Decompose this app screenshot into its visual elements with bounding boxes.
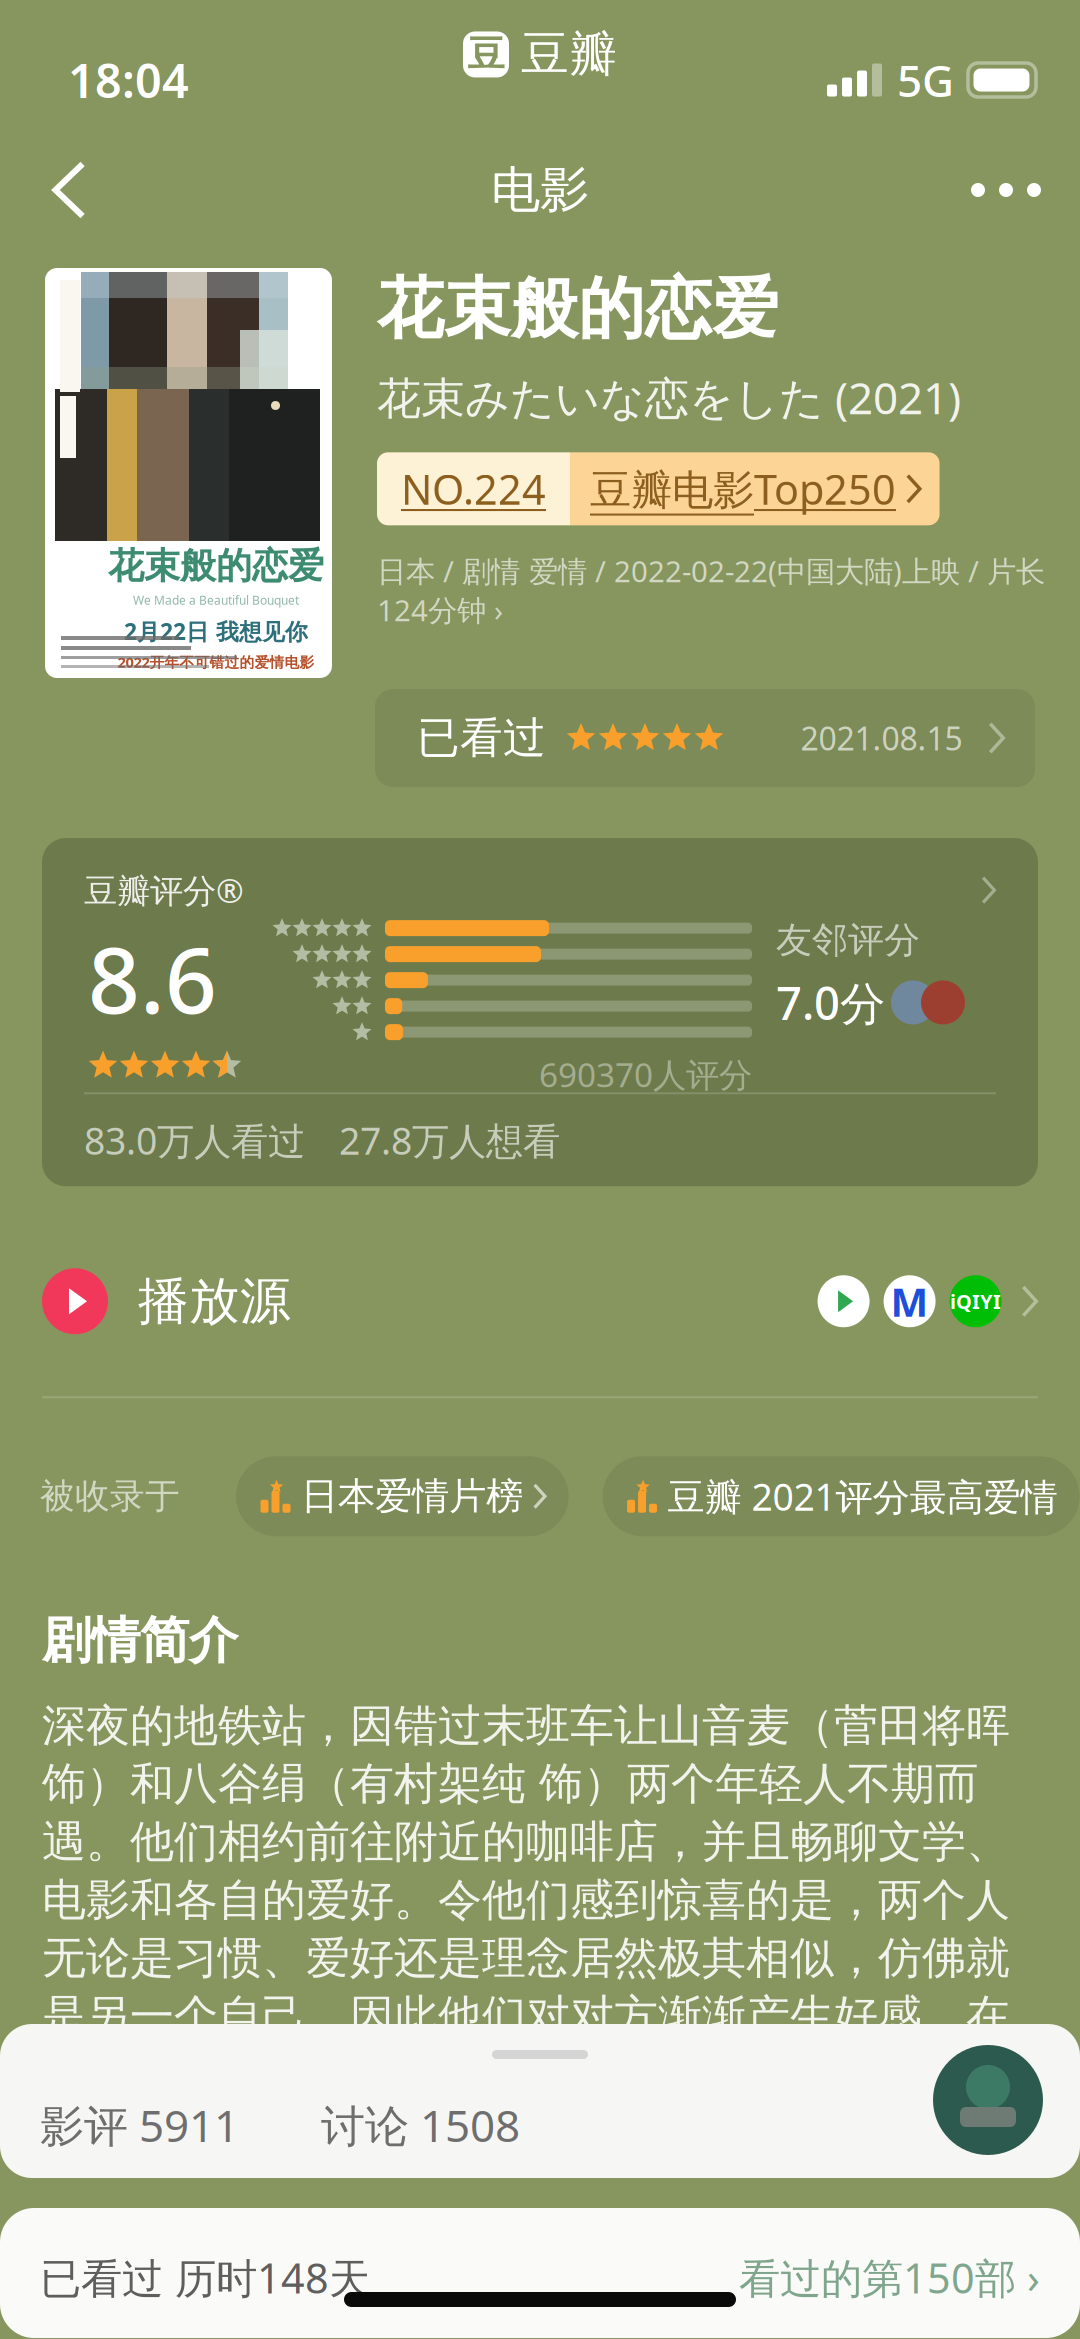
staticText: 播放源: [138, 1270, 291, 1332]
staticText: 剧情简介: [42, 1610, 238, 1671]
staticText: 8.6: [88, 918, 217, 1038]
button[interactable]: More: [946, 131, 1066, 249]
button[interactable]: 豆瓣 2021评分最高爱情: [603, 1456, 1080, 1536]
staticText: 花束みたいな恋をした (2021): [377, 368, 961, 426]
button[interactable]: 日本爱情片榜: [236, 1456, 569, 1536]
button[interactable]: 影评 5911: [0, 2078, 279, 2172]
button[interactable]: Back: [14, 131, 124, 249]
staticText: 83.0万人看过: [84, 1115, 305, 1165]
button[interactable]: 豆瓣评分®: [42, 838, 1038, 1186]
staticText: 5G: [897, 51, 954, 109]
staticText: 被收录于: [40, 1475, 180, 1518]
staticText: 讨论 1508: [321, 2096, 520, 2154]
staticText: NO.224: [401, 461, 546, 516]
staticText: M: [891, 1275, 929, 1328]
staticText: 27.8万人想看: [339, 1115, 560, 1165]
staticText: 豆瓣评分®: [84, 868, 244, 912]
staticText: 日本爱情片榜: [301, 1473, 523, 1519]
staticText: 7.0分: [776, 972, 885, 1033]
staticText: 690370人评分: [539, 1052, 752, 1096]
staticText: 豆瓣电影Top250: [590, 461, 896, 516]
button[interactable]: 已看过: [375, 689, 1035, 787]
staticText: 花束般的恋爱: [377, 268, 779, 350]
staticText: 友邻评分: [776, 918, 920, 962]
staticText: We Made a Beautiful Bouquet: [133, 592, 299, 608]
staticText: 花束般的恋爱: [108, 544, 324, 588]
staticText: iQIYI: [950, 1288, 1001, 1315]
staticText: 2021.08.15: [800, 717, 962, 759]
button[interactable]: 讨论 1508: [279, 2078, 562, 2172]
staticText: 看过的第150部 ›: [739, 2250, 1040, 2305]
button[interactable]: NO.224: [377, 452, 939, 525]
button[interactable]: 播放源: [0, 1206, 1080, 1396]
staticText: 深夜的地铁站，因错过末班车让山音麦（菅田将晖 饰）和八谷绢（有村架纯 饰）两个年…: [42, 1699, 1010, 2043]
staticText: 2022开年不可错过的爱情电影: [117, 652, 314, 672]
staticText: 电影: [491, 160, 589, 220]
staticText: 18:04: [68, 49, 189, 111]
staticText: 豆瓣 2021评分最高爱情: [668, 1471, 1058, 1521]
staticText: 豆: [467, 32, 504, 77]
staticText: 日本 / 剧情 爱情 / 2022-02-22(中国大陆)上映 / 片长124分…: [377, 551, 1045, 629]
staticText: 豆瓣: [521, 25, 617, 84]
staticText: 已看过 历时148天: [40, 2250, 370, 2305]
staticText: 已看过: [417, 712, 546, 764]
staticText: 影评 5911: [40, 2096, 239, 2154]
staticText: 2月22日 我想见你: [124, 616, 308, 646]
